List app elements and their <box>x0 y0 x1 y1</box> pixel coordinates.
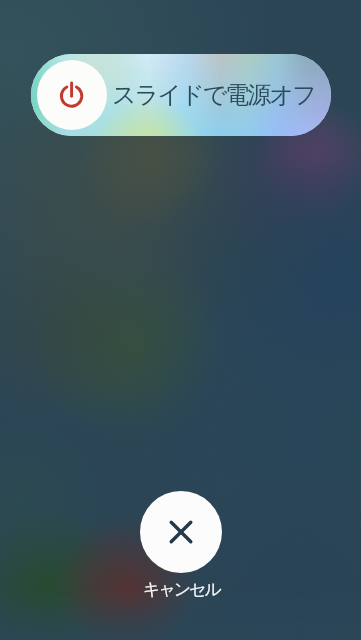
button[interactable]: スライドで電源オフ <box>31 54 331 136</box>
staticText: スライドで電源オフ <box>112 80 315 110</box>
button[interactable]: Cancel <box>140 491 222 573</box>
staticText: キャンセル <box>143 579 220 600</box>
other: Power off <box>37 60 107 130</box>
